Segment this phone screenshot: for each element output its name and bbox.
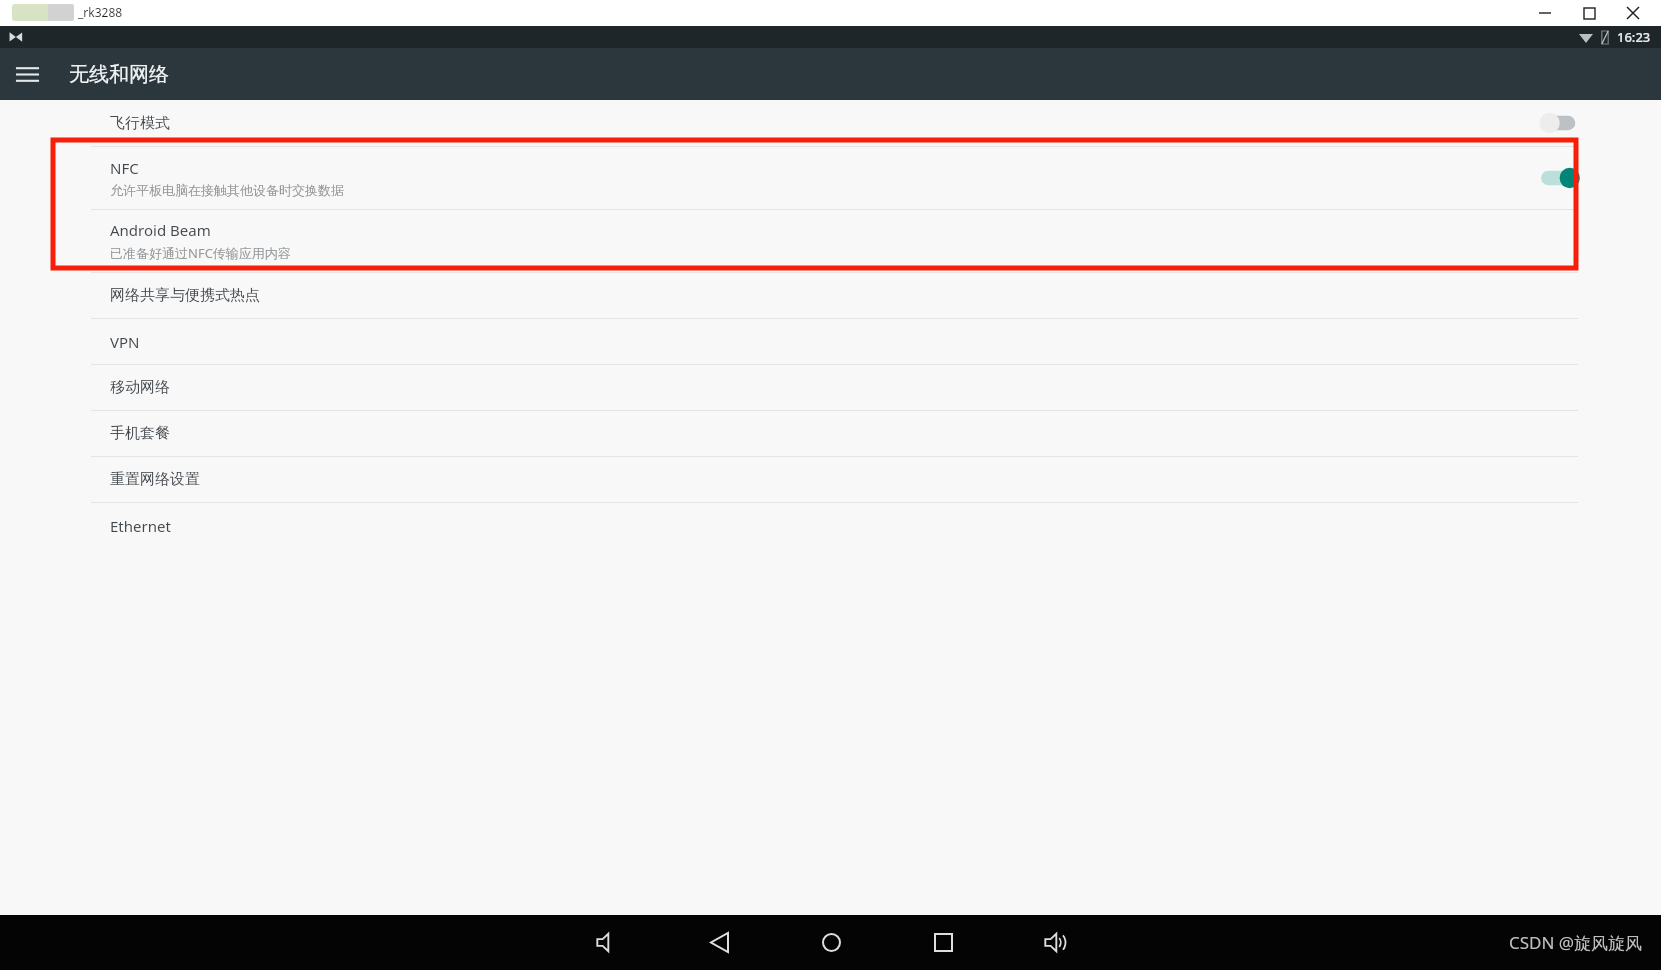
staticText: 16:23	[1617, 28, 1651, 46]
button[interactable]: Volume up	[1032, 915, 1078, 970]
button[interactable]: Minimize	[1523, 0, 1567, 26]
button[interactable]: 手机套餐	[0, 411, 1661, 456]
button[interactable]: Close	[1611, 0, 1655, 26]
staticText: CSDN @旋风旋风	[1509, 931, 1643, 954]
staticText: 手机套餐	[110, 424, 170, 443]
button[interactable]: 飞行模式	[0, 100, 1661, 146]
staticText: Ethernet	[110, 516, 171, 536]
staticText: 无线和网络	[69, 62, 169, 87]
button[interactable]: 网络共享与便携式热点	[0, 273, 1661, 318]
staticText: 移动网络	[110, 378, 170, 397]
staticText: 已准备好通过NFC传输应用内容	[110, 244, 291, 262]
button[interactable]: Switch off	[1541, 110, 1585, 136]
button[interactable]: 移动网络	[0, 365, 1661, 410]
button[interactable]: Volume down	[584, 915, 630, 970]
button[interactable]: Recent apps	[920, 915, 966, 970]
button[interactable]: Ethernet	[0, 503, 1661, 548]
button[interactable]: Home	[808, 915, 854, 970]
staticText: _rk3288	[78, 4, 123, 20]
button[interactable]: Switch on	[1541, 165, 1585, 191]
staticText: 重置网络设置	[110, 470, 200, 489]
staticText: 网络共享与便携式热点	[110, 286, 260, 305]
button[interactable]: Back	[696, 915, 742, 970]
staticText: VPN	[110, 332, 140, 352]
staticText: 允许平板电脑在接触其他设备时交换数据	[110, 182, 344, 198]
button[interactable]: NFC	[0, 147, 1661, 209]
button[interactable]: Android Beam	[0, 210, 1661, 272]
staticText: 飞行模式	[110, 114, 170, 133]
staticText: NFC	[110, 158, 139, 178]
button[interactable]: Maximize	[1567, 0, 1611, 26]
button[interactable]: 重置网络设置	[0, 457, 1661, 502]
button[interactable]: VPN	[0, 319, 1661, 364]
staticText: Android Beam	[110, 220, 211, 240]
button[interactable]: Open navigation drawer	[0, 48, 54, 100]
